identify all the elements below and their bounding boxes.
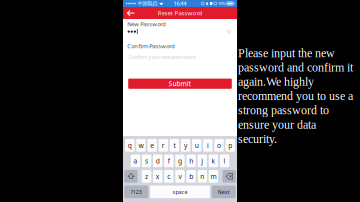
staticText: o [217, 141, 221, 150]
button[interactable]: i [203, 139, 213, 152]
button[interactable]: Next [212, 185, 236, 198]
button[interactable]: e [147, 139, 157, 152]
staticText: Next [218, 188, 230, 195]
staticText: c [167, 172, 170, 181]
staticText: z [145, 172, 148, 181]
staticText: Confirm Password [127, 42, 175, 50]
button[interactable]: Shift [124, 170, 137, 183]
staticText: y [184, 141, 187, 150]
staticText: t [173, 141, 175, 150]
staticText: q [128, 141, 132, 150]
staticText: e [150, 141, 154, 150]
staticText: f [168, 156, 170, 165]
staticText: 中国电信 [137, 0, 157, 7]
staticText: h [189, 156, 193, 165]
button[interactable]: g [175, 154, 185, 167]
staticText: g [178, 156, 182, 165]
staticText: Reset Password [157, 9, 202, 17]
button[interactable]: l [220, 154, 229, 167]
staticText: l [224, 156, 226, 165]
button[interactable]: f [164, 154, 173, 167]
button[interactable]: v [175, 170, 185, 183]
staticText: k [211, 156, 215, 165]
staticText: Submit [168, 79, 191, 88]
button[interactable]: c [164, 170, 174, 183]
staticText: p [228, 141, 232, 150]
staticText: s [145, 156, 148, 165]
button[interactable]: b [186, 170, 196, 183]
button[interactable]: k [209, 154, 218, 167]
staticText: r [162, 141, 165, 150]
staticText: w [138, 141, 143, 150]
button[interactable]: h [186, 154, 196, 167]
staticText: x [156, 172, 160, 181]
button[interactable]: p [225, 139, 235, 152]
staticText: n [200, 172, 204, 181]
staticText: m [210, 172, 216, 181]
button[interactable]: u [192, 139, 201, 152]
staticText: v [178, 172, 181, 181]
staticText: New Password [127, 20, 166, 28]
button[interactable]: q [125, 139, 134, 152]
button[interactable]: w [136, 139, 146, 152]
staticText: Confirm your new password [128, 53, 195, 61]
staticText: j [201, 156, 203, 165]
button[interactable]: m [209, 170, 218, 183]
button[interactable]: Back [123, 7, 139, 19]
staticText: ?123 [131, 188, 142, 195]
staticText: 90% [218, 1, 225, 6]
staticText: a [133, 156, 137, 165]
button[interactable]: r [159, 139, 168, 152]
button[interactable]: s [142, 154, 151, 167]
button[interactable]: space [150, 185, 210, 198]
button[interactable]: a [131, 154, 140, 167]
button[interactable]: Delete [222, 170, 236, 183]
button[interactable]: o [214, 139, 224, 152]
staticText: space [172, 188, 187, 195]
staticText: i [207, 141, 209, 150]
button[interactable]: n [198, 170, 207, 183]
button[interactable]: t [170, 139, 179, 152]
staticText: u [195, 141, 199, 150]
button[interactable]: z [142, 170, 151, 183]
staticText: d [156, 156, 160, 165]
button[interactable]: y [181, 139, 190, 152]
staticText: b [189, 172, 193, 181]
staticText: Please input the new password and confir… [238, 46, 353, 145]
staticText: 16:44 [173, 0, 186, 7]
button[interactable]: d [153, 154, 162, 167]
button[interactable]: x [153, 170, 162, 183]
button[interactable]: Submit [128, 79, 232, 89]
button[interactable]: ?123 [124, 185, 148, 198]
button[interactable]: j [198, 154, 207, 167]
